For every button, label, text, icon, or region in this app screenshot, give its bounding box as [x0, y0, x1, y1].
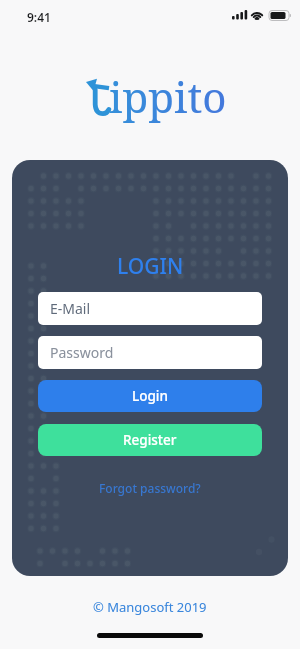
staticText: Password	[50, 343, 114, 362]
staticText: © Mangosoft 2019	[93, 598, 207, 616]
staticText: Login	[132, 387, 168, 405]
button[interactable]: Login	[38, 380, 262, 412]
button[interactable]: Password	[38, 336, 262, 369]
staticText: E-Mail	[50, 299, 91, 318]
button[interactable]: Register	[38, 424, 262, 456]
staticText: Register	[123, 431, 177, 449]
button[interactable]: Forgot password?	[99, 480, 201, 496]
staticText: LOGIN	[117, 252, 184, 281]
button[interactable]: E-Mail	[38, 292, 262, 325]
staticText: 9:41	[27, 9, 51, 25]
staticText: Forgot password?	[99, 480, 201, 496]
staticText: ippito	[109, 68, 227, 125]
